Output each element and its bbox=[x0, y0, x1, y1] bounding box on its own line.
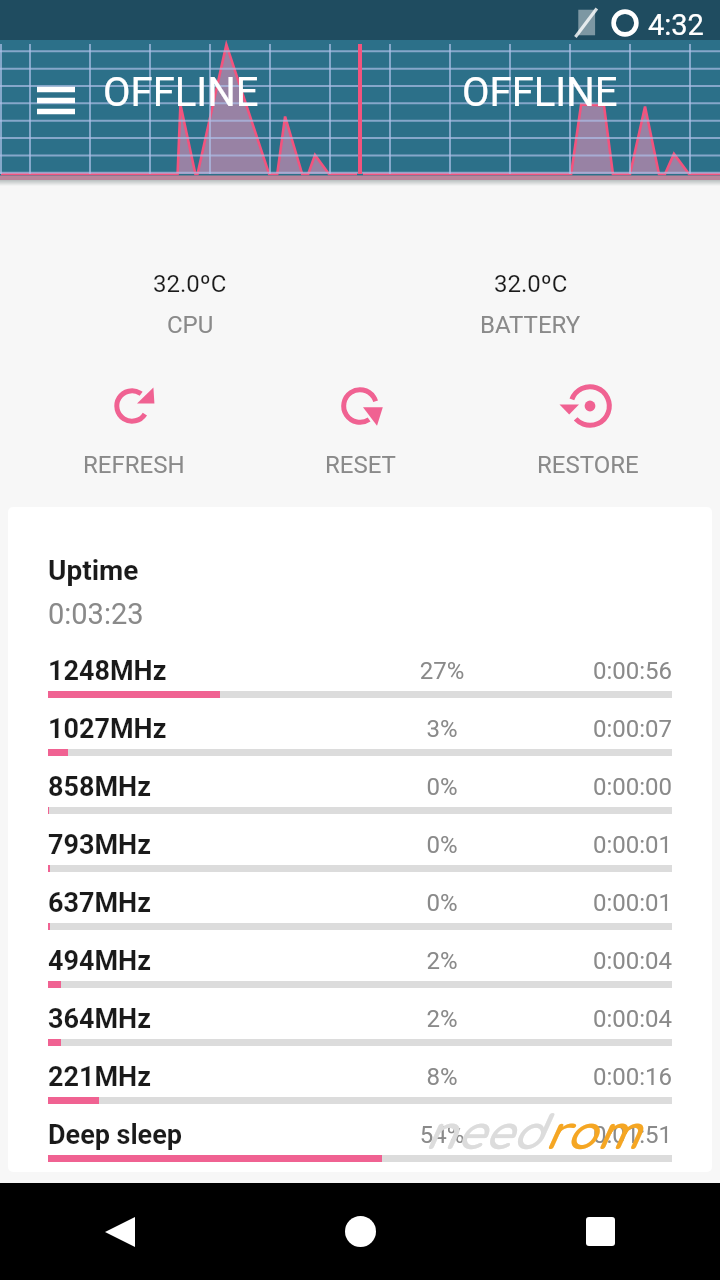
staticText: RESET bbox=[325, 451, 396, 479]
staticText: 0% bbox=[397, 773, 487, 801]
staticText: 32.0ºC bbox=[494, 270, 568, 298]
button[interactable]: 1248MHz bbox=[48, 650, 672, 708]
staticText: 2% bbox=[397, 947, 487, 975]
staticText: need bbox=[424, 1108, 544, 1159]
staticText: 0:03:23 bbox=[48, 597, 144, 631]
button[interactable]: 1027MHz bbox=[48, 708, 672, 766]
button[interactable]: 364MHz bbox=[48, 998, 672, 1056]
staticText: 0% bbox=[397, 889, 487, 917]
button[interactable]: Recents bbox=[480, 1183, 720, 1280]
staticText: 0:00:56 bbox=[487, 657, 672, 685]
staticText: 54% bbox=[397, 1121, 487, 1149]
staticText: BATTERY bbox=[480, 311, 581, 339]
staticText: 0:00:00 bbox=[487, 773, 672, 801]
staticText: 364MHz bbox=[48, 1003, 397, 1035]
staticText: CPU bbox=[167, 311, 214, 339]
button[interactable]: Deep sleep bbox=[48, 1114, 672, 1172]
button[interactable]: REFRESH bbox=[44, 379, 224, 489]
staticText: 221MHz bbox=[48, 1061, 397, 1093]
button[interactable]: 858MHz bbox=[48, 766, 672, 824]
staticText: 0:01:51 bbox=[487, 1121, 672, 1149]
staticText: Deep sleep bbox=[48, 1119, 397, 1151]
staticText: 858MHz bbox=[48, 771, 397, 803]
button[interactable]: Home bbox=[240, 1183, 480, 1280]
staticText: RESTORE bbox=[537, 451, 639, 479]
button[interactable]: 793MHz bbox=[48, 824, 672, 882]
staticText: 0:00:07 bbox=[487, 715, 672, 743]
staticText: 0:00:01 bbox=[487, 831, 672, 859]
staticText: 0:00:16 bbox=[487, 1063, 672, 1091]
staticText: rom bbox=[544, 1108, 639, 1159]
staticText: 3% bbox=[397, 715, 487, 743]
button[interactable]: RESET bbox=[270, 379, 450, 489]
staticText: REFRESH bbox=[83, 451, 185, 479]
staticText: 0:00:04 bbox=[487, 1005, 672, 1033]
button[interactable]: 494MHz bbox=[48, 940, 672, 998]
staticText: 32.0ºC bbox=[153, 270, 227, 298]
button[interactable]: Menu bbox=[13, 40, 99, 180]
staticText: OFFLINE bbox=[462, 69, 618, 116]
staticText: OFFLINE bbox=[103, 69, 259, 116]
staticText: Uptime bbox=[48, 554, 139, 587]
staticText: 0% bbox=[397, 831, 487, 859]
button[interactable]: RESTORE bbox=[498, 379, 678, 489]
staticText: 4:32 bbox=[648, 8, 704, 42]
staticText: 494MHz bbox=[48, 945, 397, 977]
button[interactable]: 221MHz bbox=[48, 1056, 672, 1114]
staticText: 637MHz bbox=[48, 887, 397, 919]
staticText: 27% bbox=[397, 657, 487, 685]
button[interactable]: 637MHz bbox=[48, 882, 672, 940]
staticText: 0:00:01 bbox=[487, 889, 672, 917]
button[interactable]: Back bbox=[0, 1183, 240, 1280]
staticText: 2% bbox=[397, 1005, 487, 1033]
staticText: 1027MHz bbox=[48, 713, 397, 745]
staticText: 793MHz bbox=[48, 829, 397, 861]
staticText: 1248MHz bbox=[48, 655, 397, 687]
staticText: 8% bbox=[397, 1063, 487, 1091]
staticText: 0:00:04 bbox=[487, 947, 672, 975]
